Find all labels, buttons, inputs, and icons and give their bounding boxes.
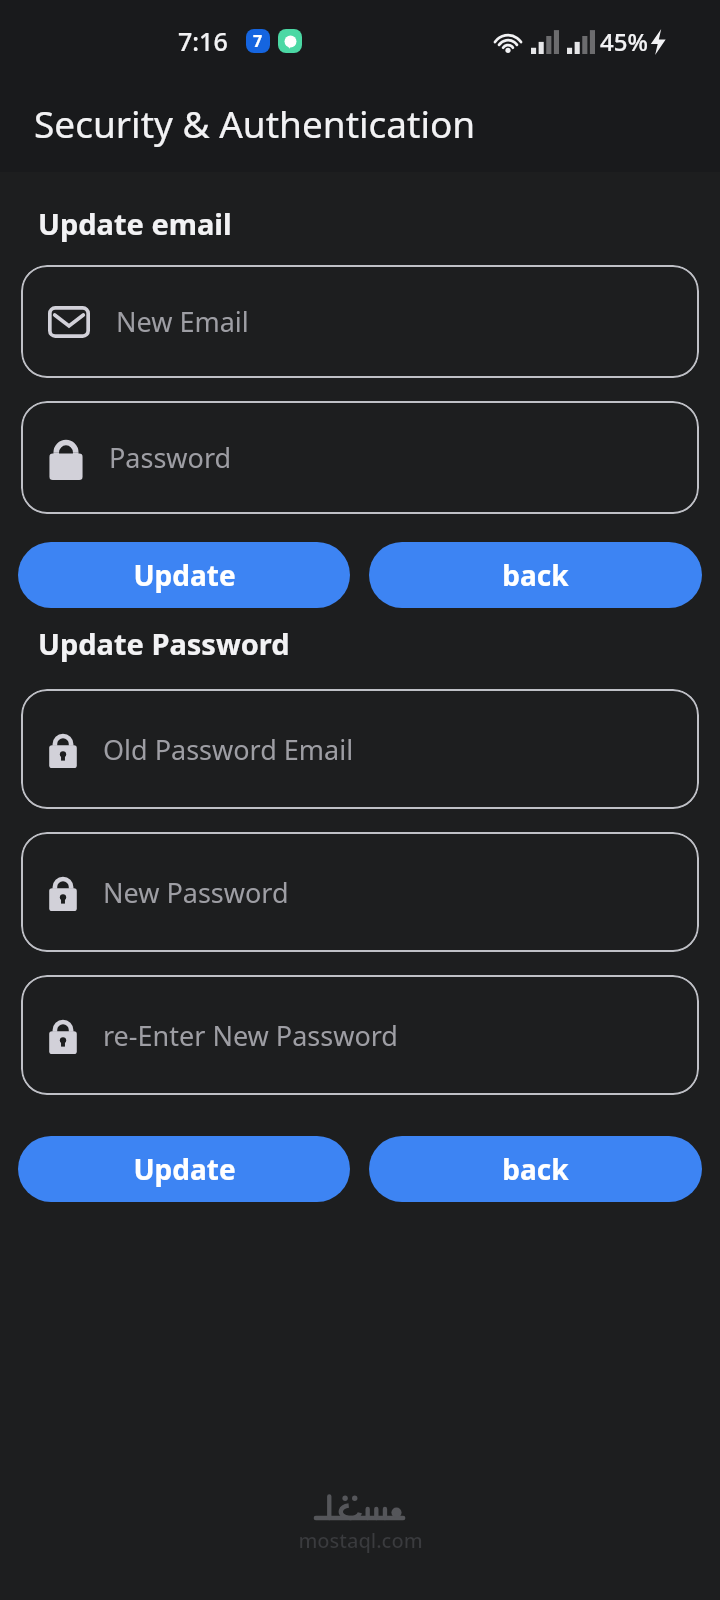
staticText: 7: [253, 30, 263, 52]
staticText: Update: [133, 1150, 236, 1188]
staticText: Old Password Email: [103, 731, 354, 768]
staticText: back: [502, 556, 569, 594]
staticText: 7:16: [178, 24, 228, 58]
staticText: re-Enter New Password: [103, 1017, 398, 1054]
staticText: New Password: [103, 874, 289, 911]
button[interactable]: Password: [21, 401, 699, 514]
staticText: back: [502, 1150, 569, 1188]
button[interactable]: Update: [18, 1136, 350, 1202]
staticText: Security & Authentication: [34, 98, 476, 148]
button[interactable]: New Email: [21, 265, 699, 378]
staticText: 45%: [600, 25, 648, 58]
button[interactable]: re-Enter New Password: [21, 975, 699, 1095]
staticText: mostaql.com: [298, 1527, 423, 1554]
staticText: New Email: [116, 303, 249, 340]
button[interactable]: New Password: [21, 832, 699, 952]
button[interactable]: back: [369, 542, 702, 608]
staticText: Update Password: [38, 624, 290, 663]
button[interactable]: Old Password Email: [21, 689, 699, 809]
button[interactable]: back: [369, 1136, 702, 1202]
staticText: Update email: [38, 204, 232, 243]
staticText: Update: [133, 556, 236, 594]
button[interactable]: Update: [18, 542, 350, 608]
staticText: Password: [109, 439, 232, 476]
